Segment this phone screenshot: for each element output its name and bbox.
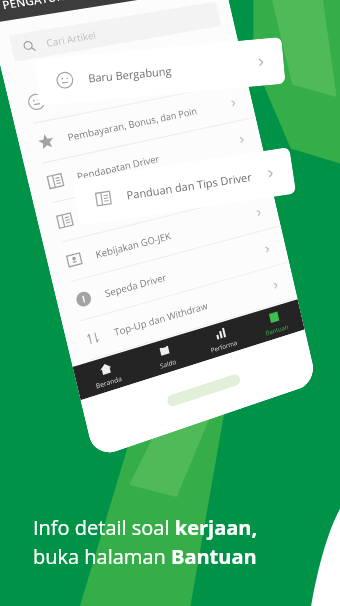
- staticText: PENGATURAN: [0, 0, 82, 12]
- button[interactable]: Panduan dan Tips Driver: [72, 147, 296, 226]
- button[interactable]: Bantuan: [245, 299, 305, 346]
- staticText: Performa: [210, 338, 238, 355]
- staticText: Panduan dan Tips Driver: [125, 169, 253, 202]
- staticText: Panduan dan Tips Driver: [85, 184, 193, 222]
- button[interactable]: Sepeda Driver: [53, 226, 289, 326]
- staticText: buka halaman Bantuan: [33, 543, 257, 570]
- button[interactable]: Panduan dan Tips Driver: [34, 154, 272, 247]
- button[interactable]: Baru Bergabung: [34, 37, 286, 106]
- staticText: Saldo: [159, 357, 177, 371]
- staticText: Baru Bergabung: [57, 78, 133, 105]
- button[interactable]: Beranda: [73, 349, 141, 400]
- staticText: Top-Up dan Withdraw: [113, 299, 209, 339]
- staticText: Pendapatan Driver: [76, 152, 161, 183]
- button[interactable]: Top-Up dan Withdraw: [63, 262, 297, 366]
- button[interactable]: Saldo: [133, 331, 198, 381]
- button[interactable]: Baru Bergabung: [5, 44, 247, 127]
- staticText: Cari Artikel: [45, 28, 98, 50]
- staticText: Beranda: [95, 374, 123, 391]
- staticText: Sepeda Driver: [103, 271, 168, 300]
- button[interactable]: Kebijakan GO-JEK: [44, 190, 281, 287]
- staticText: Baru Bergabung: [88, 63, 173, 85]
- staticText: Pembayaran, Bonus, dan Poin: [66, 104, 198, 144]
- button[interactable]: Performa: [190, 315, 253, 363]
- staticText: Bantuan: [265, 322, 289, 337]
- button[interactable]: Pendapatan Driver: [25, 117, 264, 207]
- button[interactable]: Cari Artikel: [8, 1, 222, 62]
- button[interactable]: Pembayaran, Bonus, dan Poin: [15, 81, 256, 167]
- staticText: Kebijakan GO-JEK: [94, 229, 172, 261]
- staticText: Info detail soal kerjaan,: [33, 514, 258, 541]
